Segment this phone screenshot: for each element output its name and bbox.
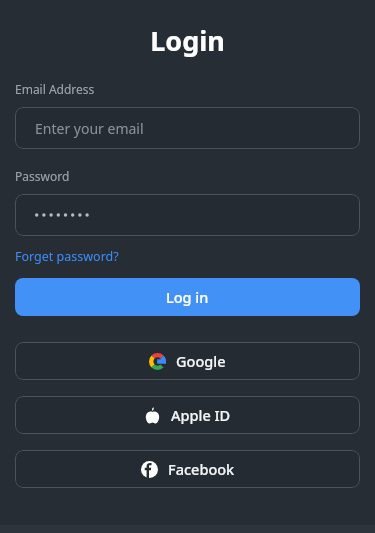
staticText: Enter your email [35, 119, 144, 138]
button[interactable]: Apple ID [15, 396, 360, 434]
staticText: Email Address [15, 81, 95, 97]
button[interactable] [15, 194, 360, 236]
button[interactable]: Enter your email [15, 107, 360, 149]
button[interactable]: Facebook [15, 450, 360, 488]
staticText: Forget password? [15, 248, 119, 265]
button[interactable]: Forget password? [15, 248, 119, 265]
staticText: Password [15, 168, 70, 184]
staticText: Google [176, 351, 226, 371]
staticText: Login [0, 22, 375, 59]
staticText: Facebook [168, 459, 235, 479]
button[interactable]: Log in [15, 278, 360, 316]
staticText: Log in [166, 287, 209, 307]
button[interactable]: Google [15, 342, 360, 380]
staticText: Apple ID [171, 405, 231, 425]
